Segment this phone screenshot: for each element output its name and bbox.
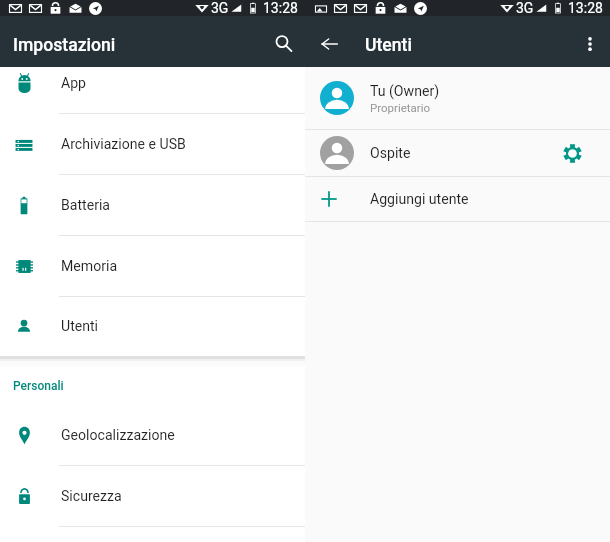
- button[interactable]: Back: [309, 24, 349, 64]
- button[interactable]: Tu (Owner): [305, 67, 610, 129]
- staticText: Utenti: [61, 318, 99, 335]
- staticText: Proprietario: [370, 101, 431, 114]
- button[interactable]: Utenti: [0, 297, 305, 356]
- staticText: Batteria: [61, 197, 111, 214]
- button[interactable]: Memoria: [0, 236, 305, 297]
- button[interactable]: App: [0, 53, 305, 114]
- staticText: Tu (Owner): [370, 83, 440, 100]
- staticText: Personali: [13, 379, 64, 393]
- staticText: Aggiungi utente: [370, 191, 469, 208]
- staticText: App: [61, 75, 87, 92]
- button[interactable]: Geolocalizzazione: [0, 405, 305, 466]
- button[interactable]: Guest settings: [552, 133, 592, 173]
- button[interactable]: More options: [570, 24, 610, 64]
- button[interactable]: Archiviazione e USB: [0, 114, 305, 175]
- staticText: Sicurezza: [61, 488, 122, 505]
- button[interactable]: Sicurezza: [0, 466, 305, 527]
- staticText: 3G: [516, 0, 534, 16]
- staticText: 13:28: [568, 0, 603, 16]
- staticText: Ospite: [370, 145, 411, 162]
- button[interactable]: Batteria: [0, 175, 305, 236]
- button[interactable]: Ospite: [305, 130, 610, 176]
- button[interactable]: Search: [263, 23, 303, 63]
- button[interactable]: Aggiungi utente: [305, 177, 610, 221]
- staticText: 3G: [211, 0, 229, 16]
- staticText: Memoria: [61, 258, 118, 275]
- staticText: Archiviazione e USB: [61, 136, 186, 153]
- staticText: 13:28: [263, 0, 298, 16]
- staticText: Geolocalizzazione: [61, 427, 175, 444]
- staticText: Utenti: [365, 35, 412, 56]
- staticText: Impostazioni: [13, 35, 116, 56]
